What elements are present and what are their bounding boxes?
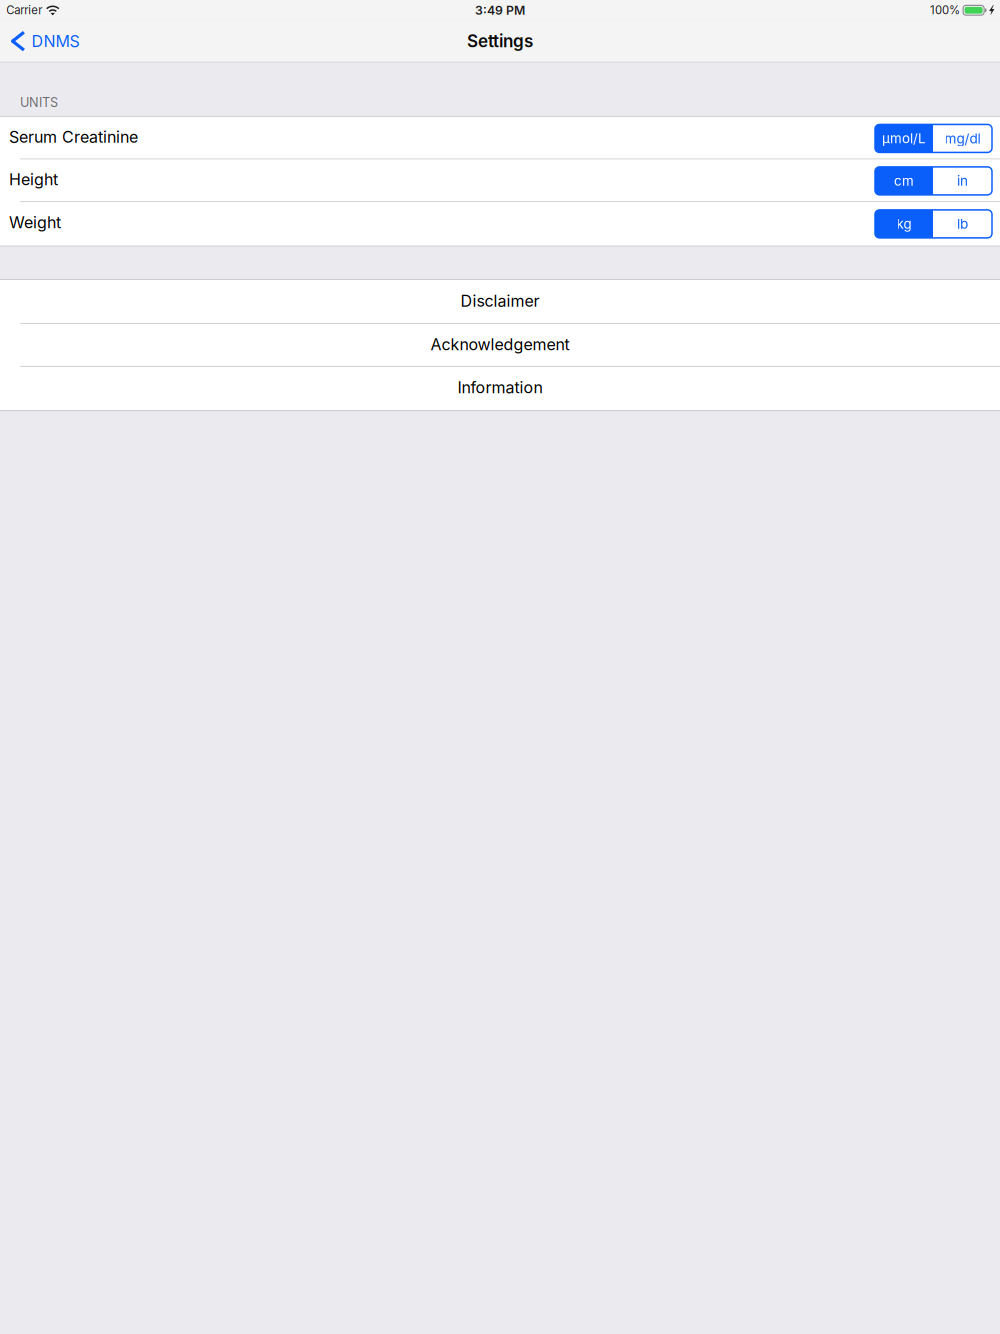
staticText: cm — [894, 173, 914, 189]
staticText: Carrier — [6, 3, 42, 17]
button[interactable]: Information — [0, 367, 1000, 410]
button[interactable]: DNMS — [0, 20, 87, 62]
staticText: Information — [457, 378, 542, 397]
staticText: mg/dl — [944, 130, 980, 147]
button[interactable]: mg/dl — [933, 124, 992, 152]
staticText: Acknowledgement — [430, 335, 569, 354]
button[interactable]: lb — [933, 210, 992, 238]
staticText: Settings — [467, 31, 533, 51]
staticText: 100% — [930, 3, 960, 17]
staticText: kg — [896, 216, 911, 232]
staticText: Serum Creatinine — [9, 127, 138, 147]
staticText: Disclaimer — [460, 291, 539, 311]
button[interactable]: cm — [875, 167, 933, 195]
button[interactable]: µmol/L — [875, 124, 933, 152]
staticText: DNMS — [31, 31, 79, 51]
staticText: Height — [9, 170, 58, 189]
button[interactable]: kg — [875, 210, 933, 238]
staticText: in — [957, 173, 968, 189]
staticText: lb — [957, 216, 968, 232]
button[interactable]: Disclaimer — [0, 280, 1000, 324]
staticText: UNITS — [20, 95, 58, 110]
button[interactable]: in — [933, 167, 992, 195]
staticText: Weight — [9, 213, 61, 232]
staticText: 3:49 PM — [475, 3, 525, 18]
button[interactable]: Acknowledgement — [0, 324, 1000, 367]
staticText: µmol/L — [882, 130, 926, 146]
